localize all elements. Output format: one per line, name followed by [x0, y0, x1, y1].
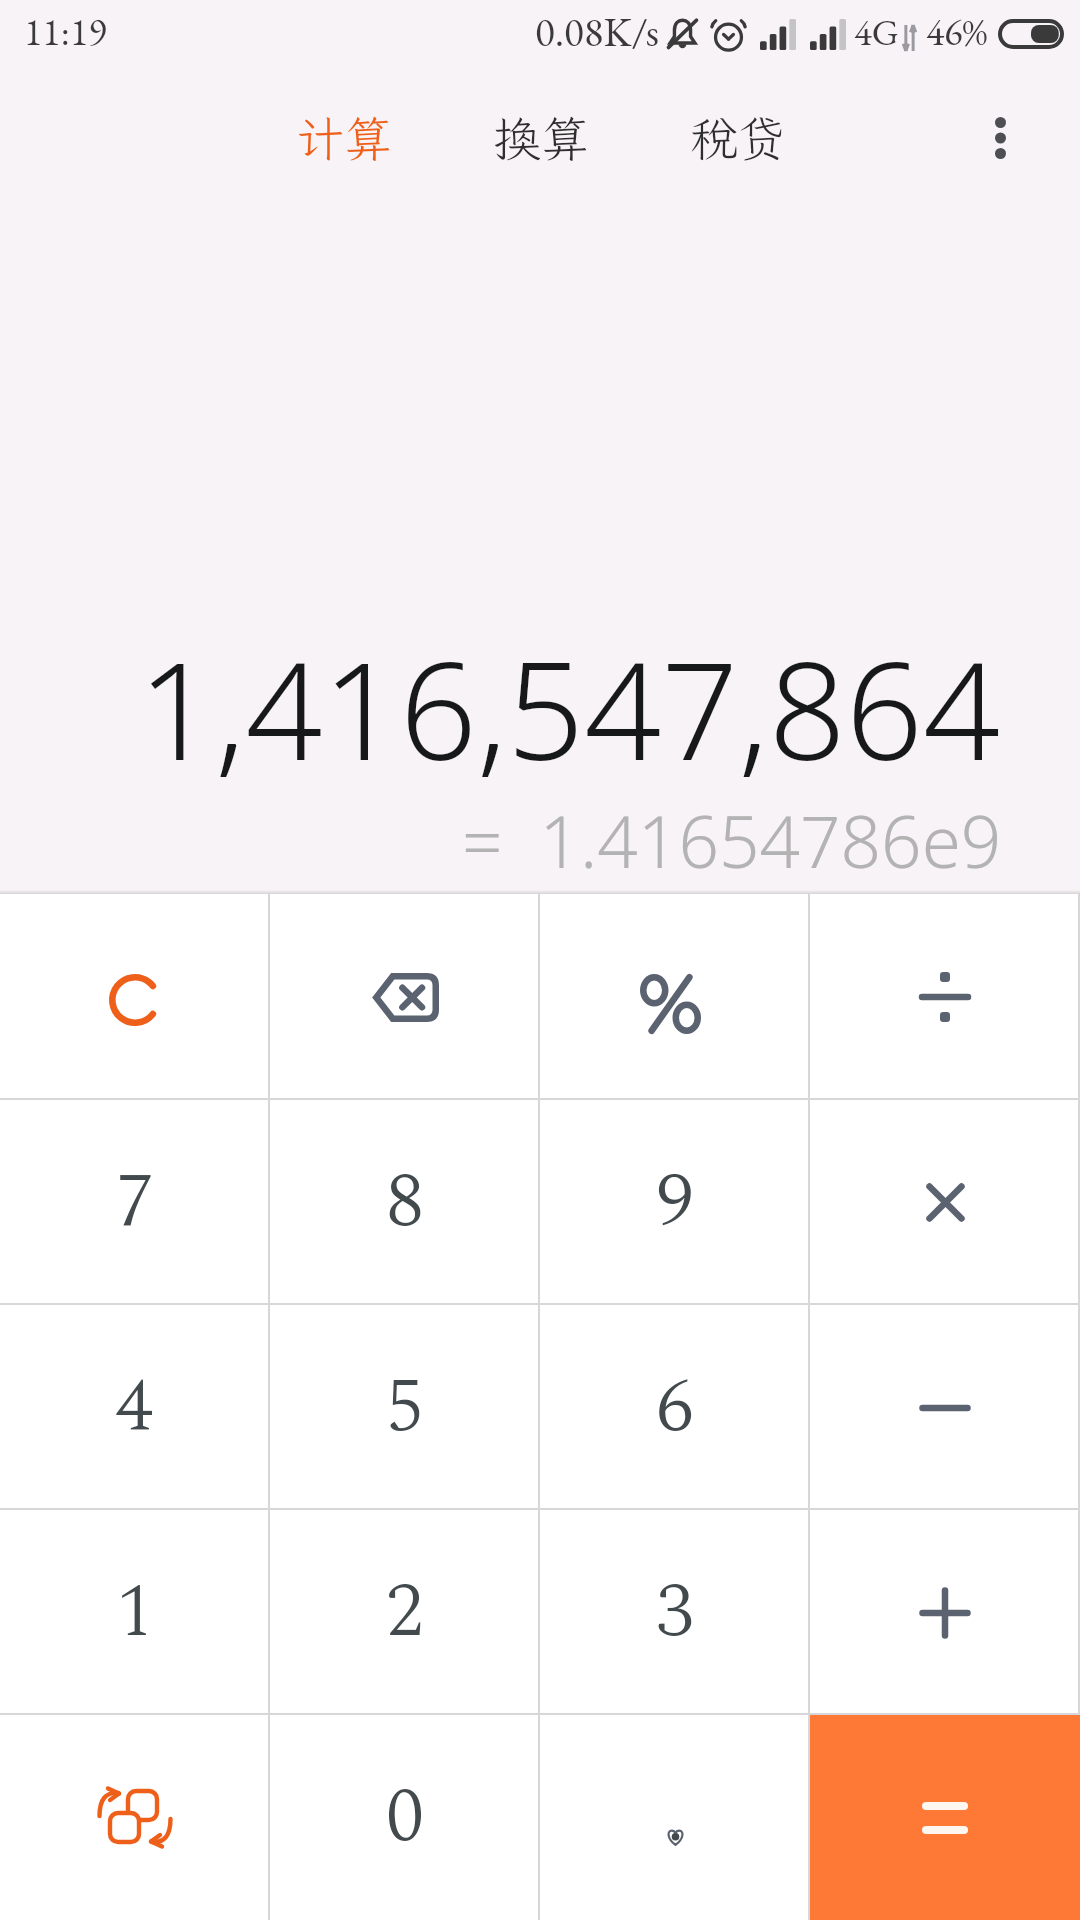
staticText: 7 — [116, 1145, 154, 1261]
staticText: 换算 — [493, 106, 590, 169]
button[interactable]: 7 — [0, 1100, 270, 1305]
button[interactable]: Backspace — [270, 894, 540, 1100]
button[interactable]: Divide — [810, 894, 1080, 1100]
staticText: 1 — [116, 1555, 154, 1671]
staticText: 46% — [926, 7, 988, 57]
button[interactable]: 9 — [540, 1100, 810, 1305]
button[interactable]: Unit converter — [0, 1715, 270, 1920]
button[interactable]: More options — [960, 98, 1040, 178]
button[interactable]: 4 — [0, 1305, 270, 1510]
button[interactable]: Percent — [540, 894, 810, 1100]
staticText: 1,416,547,864 — [138, 616, 1000, 800]
staticText: 2 — [386, 1555, 424, 1671]
button[interactable]: 换算 — [451, 92, 632, 183]
button[interactable]: 税贷 — [648, 92, 829, 183]
button[interactable]: 计算 — [254, 92, 435, 183]
button[interactable]: 5 — [270, 1305, 540, 1510]
button[interactable]: 8 — [270, 1100, 540, 1305]
button[interactable]: 0 — [270, 1715, 540, 1920]
staticText: 0.08K/s — [535, 5, 659, 59]
staticText: 5 — [386, 1350, 424, 1466]
staticText: 0 — [386, 1760, 424, 1876]
button[interactable]: Plus — [810, 1510, 1080, 1715]
button[interactable]: 3 — [540, 1510, 810, 1715]
staticText: 6 — [656, 1350, 694, 1466]
staticText: 税贷 — [690, 106, 787, 169]
button[interactable]: Clear — [0, 894, 270, 1100]
staticText: 4G — [854, 8, 899, 56]
staticText: 4 — [116, 1350, 154, 1466]
staticText: 9 — [656, 1145, 694, 1261]
button[interactable]: 2 — [270, 1510, 540, 1715]
button[interactable]: Multiply — [810, 1100, 1080, 1305]
button[interactable]: 1 — [0, 1510, 270, 1715]
button[interactable]: 6 — [540, 1305, 810, 1510]
button[interactable]: Minus — [810, 1305, 1080, 1510]
staticText: 计算 — [296, 106, 393, 169]
staticText: 3 — [656, 1555, 694, 1671]
staticText: 8 — [386, 1145, 424, 1261]
button[interactable]: Equals — [810, 1715, 1080, 1920]
button[interactable]: Decimal point — [540, 1715, 810, 1920]
staticText: = 1.41654786e9 — [462, 792, 1002, 889]
staticText: 11:19 — [24, 7, 107, 57]
